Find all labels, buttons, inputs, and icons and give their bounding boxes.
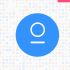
button[interactable]: Account (16, 13, 59, 57)
